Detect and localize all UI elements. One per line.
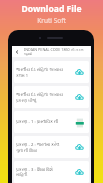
button[interactable]: Download xyxy=(73,141,86,154)
staticText: INDIAN PENAL CODE 1860 ની નકલ જુઓ xyxy=(24,47,91,56)
staticText: પ્રકરણ બીજું xyxy=(16,98,37,103)
staticText: Kruti Soft xyxy=(37,16,66,25)
button[interactable]: Download xyxy=(73,66,86,79)
staticText: ભારતીય દંડ સંહિતા અધ્યાય xyxy=(16,92,63,98)
button[interactable]: ભારતીય દંડ સંહિતા અધ્યાય xyxy=(14,61,89,83)
staticText: Download File xyxy=(21,3,82,15)
staticText: માહિતી xyxy=(16,173,28,177)
button[interactable]: Back xyxy=(12,47,22,56)
staticText: ભારતીય દંડ સંહિતા અધ્યાય xyxy=(16,67,63,73)
staticText: ગુના ની શિક્ષા xyxy=(16,148,37,153)
button[interactable]: Open file xyxy=(73,116,86,129)
staticText: પ્રકરણ - 1 : પ્રાસ્તાવિક ની xyxy=(16,119,59,125)
button[interactable]: પ્રકરણ - 3 : શિક્ષા વિશે xyxy=(14,161,89,183)
staticText: કલમ 1 xyxy=(16,73,28,78)
button[interactable]: Download xyxy=(73,91,86,104)
button[interactable]: પ્રકરણ - 1 : પ્રાસ્તાવિક ની xyxy=(14,111,89,133)
staticText: પ્રકરણ - 2 : ભારતમા કરેલ xyxy=(16,142,60,148)
button[interactable]: Download xyxy=(73,166,86,179)
button[interactable]: પ્રકરણ - 2 : ભારતમા કરેલ xyxy=(14,136,89,158)
staticText: પ્રકરણ - 3 : શિક્ષા વિશે xyxy=(16,167,53,173)
button[interactable]: ભારતીય દંડ સંહિતા અધ્યાય xyxy=(14,86,89,108)
